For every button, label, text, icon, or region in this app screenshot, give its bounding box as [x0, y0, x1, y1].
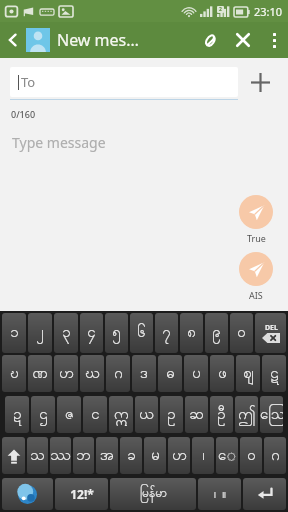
button[interactable]: Send via True	[239, 195, 273, 229]
staticText: ယ	[139, 404, 154, 426]
staticText: ဣ	[114, 404, 129, 426]
button[interactable]: ဟ	[168, 437, 190, 474]
staticText: ဂ	[114, 363, 123, 385]
button[interactable]: မြန်မာ	[110, 478, 196, 510]
button[interactable]: ၅	[105, 313, 128, 353]
button[interactable]: ဤ	[235, 396, 258, 433]
staticText: ေ	[218, 445, 236, 467]
button[interactable]: ၉	[205, 313, 228, 353]
button[interactable]: ၀	[230, 313, 253, 353]
button[interactable]	[2, 437, 25, 474]
staticText: ဋ	[270, 363, 279, 385]
button[interactable]: ၆	[130, 313, 153, 353]
staticText: True	[247, 232, 266, 244]
button[interactable]: ၇	[155, 313, 178, 353]
button[interactable]	[243, 478, 286, 510]
button[interactable]: ၂	[28, 313, 52, 353]
button[interactable]: သ	[27, 437, 48, 474]
button[interactable]: ဋ	[262, 355, 286, 392]
staticText: ဘ	[76, 445, 91, 467]
staticText: ဿ	[50, 445, 71, 467]
button[interactable]: ဎ	[2, 355, 26, 392]
button[interactable]: ဪ	[260, 396, 283, 433]
button[interactable]: ဣ	[109, 396, 133, 433]
staticText: ဂ	[271, 445, 280, 467]
button[interactable]: ဂ	[264, 437, 286, 474]
staticText: ပ	[192, 363, 201, 385]
staticText: ဍ	[13, 404, 22, 426]
button[interactable]: ဃ	[80, 355, 104, 392]
staticText: 0/160	[11, 108, 36, 120]
button[interactable]: ၊	[192, 437, 214, 474]
button[interactable]: ဌ	[31, 396, 55, 433]
button[interactable]: Attach	[192, 22, 226, 58]
button[interactable]: Close	[226, 22, 260, 58]
button[interactable]: ဆ	[185, 396, 208, 433]
button[interactable]: Type message	[12, 133, 106, 152]
button[interactable]: ပ	[184, 355, 208, 392]
button[interactable]: ယ	[135, 396, 158, 433]
staticText: ၊	[202, 445, 205, 467]
staticText: ၂	[36, 322, 44, 344]
staticText: ခ	[127, 445, 136, 467]
staticText: To	[21, 73, 36, 91]
staticText: ဒ	[140, 363, 148, 385]
staticText: 2	[219, 6, 222, 13]
button[interactable]: ဖ	[210, 355, 234, 392]
staticText: ၇	[162, 322, 171, 344]
button[interactable]: DEL	[255, 313, 286, 353]
button[interactable]: ခ	[120, 437, 142, 474]
staticText: ဓ	[166, 363, 175, 385]
staticText: ဇ	[65, 404, 74, 426]
button[interactable]: ၈	[180, 313, 203, 353]
staticText: ဖ	[218, 363, 227, 385]
button[interactable]: More options	[260, 22, 288, 58]
button[interactable]: မ	[144, 437, 166, 474]
staticText: ဝ	[247, 445, 256, 467]
button[interactable]: ဥ	[160, 396, 183, 433]
button[interactable]: ၄	[80, 313, 103, 353]
staticText: ၁	[10, 322, 19, 344]
staticText: ၆	[137, 322, 146, 344]
button[interactable]: ဒ	[132, 355, 156, 392]
button[interactable]: ဂ	[106, 355, 130, 392]
button[interactable]: To	[10, 67, 238, 97]
staticText: ဌ	[39, 404, 48, 426]
button[interactable]: ဝ	[240, 437, 262, 474]
staticText: ဪ	[260, 404, 283, 426]
button[interactable]: ဿ	[50, 437, 71, 474]
button[interactable]: Add recipient	[238, 65, 282, 99]
button[interactable]: ဇ	[57, 396, 81, 433]
staticText: မြန်မာ	[140, 485, 167, 503]
staticText: သ	[30, 445, 45, 467]
button[interactable]: Send via AIS	[239, 252, 273, 286]
button[interactable]: ၁	[2, 313, 26, 353]
button[interactable]: အ	[96, 437, 118, 474]
staticText: င	[91, 404, 100, 426]
staticText: ဟ	[59, 363, 74, 385]
button[interactable]: ၃	[54, 313, 78, 353]
staticText: ဈ	[243, 363, 254, 385]
button[interactable]: ေ	[216, 437, 238, 474]
staticText: ၉	[212, 322, 221, 344]
button[interactable]: ဦ	[210, 396, 233, 433]
button[interactable]: ဍ	[5, 396, 29, 433]
staticText: AIS	[249, 289, 263, 301]
button[interactable]	[2, 478, 53, 510]
button[interactable]: ဟ	[54, 355, 78, 392]
button[interactable]: ဘ	[73, 437, 94, 474]
button[interactable]: 12!*	[55, 478, 108, 510]
staticText: ဏ	[32, 363, 48, 385]
staticText: မ	[151, 445, 160, 467]
button[interactable]: င	[83, 396, 107, 433]
button[interactable]: Back	[0, 22, 26, 58]
button[interactable]: ဈ	[236, 355, 260, 392]
staticText: ၃	[62, 322, 71, 344]
button[interactable]: ဏ	[28, 355, 52, 392]
button[interactable]: ၊ ။	[198, 478, 241, 510]
staticText: ၀	[237, 322, 246, 344]
button[interactable]: ဓ	[158, 355, 182, 392]
staticText: 23:10	[254, 4, 283, 19]
staticText: ၅	[112, 322, 121, 344]
staticText: ဤ	[238, 404, 256, 426]
